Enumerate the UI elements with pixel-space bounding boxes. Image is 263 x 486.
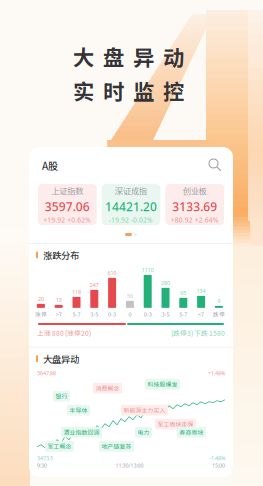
staticText: 1110 [142,266,154,273]
staticText: 247 [90,281,99,288]
button[interactable]: 创业板 [165,184,224,225]
staticText: 电力 [137,428,149,436]
staticText: 银行 [55,392,67,400]
staticText: 3473.5 [37,455,53,462]
staticText: -1.48% [209,455,225,462]
staticText: A股 [42,158,58,173]
staticText: 15:00 [212,462,225,469]
button[interactable]: 军工板块走强 [155,419,196,430]
button[interactable]: 搜索 [209,159,222,172]
staticText: 创业板 [183,185,207,197]
staticText: 118 [72,288,81,295]
button[interactable]: 军工概念 [45,441,74,452]
button[interactable]: 地产链复苏 [99,441,134,452]
staticText: 酒业指数回调 [63,428,99,436]
staticText: 20 [38,295,44,302]
staticText: -19.92 -0.02% [109,215,153,224]
staticText: 上证指数 [51,185,83,197]
staticText: 上涨 880 (涨停20) [37,328,91,338]
staticText: 3597.06 [45,199,90,214]
staticText: 实时监控 [73,75,184,106]
staticText: 9 [217,297,220,304]
staticText: 3647.88 [37,370,56,377]
staticText: 134 [197,287,206,294]
button[interactable]: 科技股爆发 [145,379,180,390]
staticText: 新能源主力买入 [123,406,165,414]
staticText: 11:30/13:00 [115,462,143,469]
staticText: 消费概念 [95,384,119,392]
staticText: 军工概念 [47,442,71,450]
staticText: 280 [161,279,170,286]
staticText: 0-3 [144,310,152,318]
staticText: 95 [180,289,186,296]
staticText: 大盘异动 [73,41,184,72]
button[interactable]: 上证指数 [38,184,97,225]
staticText: 610 [108,269,117,276]
staticText: 涨跌分布 [43,248,79,262]
button[interactable]: A股 [42,152,68,179]
staticText: +19.92 +0.62% [43,215,91,224]
staticText: 3-5 [161,310,169,318]
staticText: 军工板块走强 [157,420,193,428]
button[interactable]: 券商板块 [177,427,206,438]
staticText: <7 [198,310,204,318]
staticText: 5-7 [72,310,80,318]
button[interactable]: 深证成指 [102,184,160,225]
staticText: +80.92 +2.64% [171,215,219,224]
staticText: 14421.20 [105,199,157,214]
button[interactable]: 新能源主力买入 [121,405,168,416]
staticText: 券商板块 [179,428,203,436]
staticText: 5-7 [179,310,187,318]
staticText: 跌停 [213,310,225,318]
staticText: 0 [128,310,131,318]
button[interactable]: 半导体 [67,405,90,416]
staticText: 56 [127,292,133,299]
staticText: 0-3 [108,310,116,318]
staticText: (跌停3) 下跌 1580 [171,328,225,338]
staticText: 13 [56,296,62,303]
button[interactable]: 酒业指数回调 [61,427,102,438]
staticText: 深证成指 [115,185,147,197]
staticText: 涨停 [35,310,47,318]
button[interactable]: 电力 [135,427,152,438]
staticText: 3-5 [90,310,98,318]
button[interactable]: 银行 [53,391,70,402]
staticText: 大盘异动 [43,352,79,365]
staticText: 科技股爆发 [147,380,177,388]
staticText: >7 [56,310,62,318]
staticText: 9:30 [37,462,47,469]
staticText: 地产链复苏 [101,442,131,450]
staticText: +1.48% [208,370,225,377]
button[interactable]: 消费概念 [93,383,122,394]
staticText: 3133.69 [172,199,217,214]
staticText: 半导体 [69,406,87,414]
